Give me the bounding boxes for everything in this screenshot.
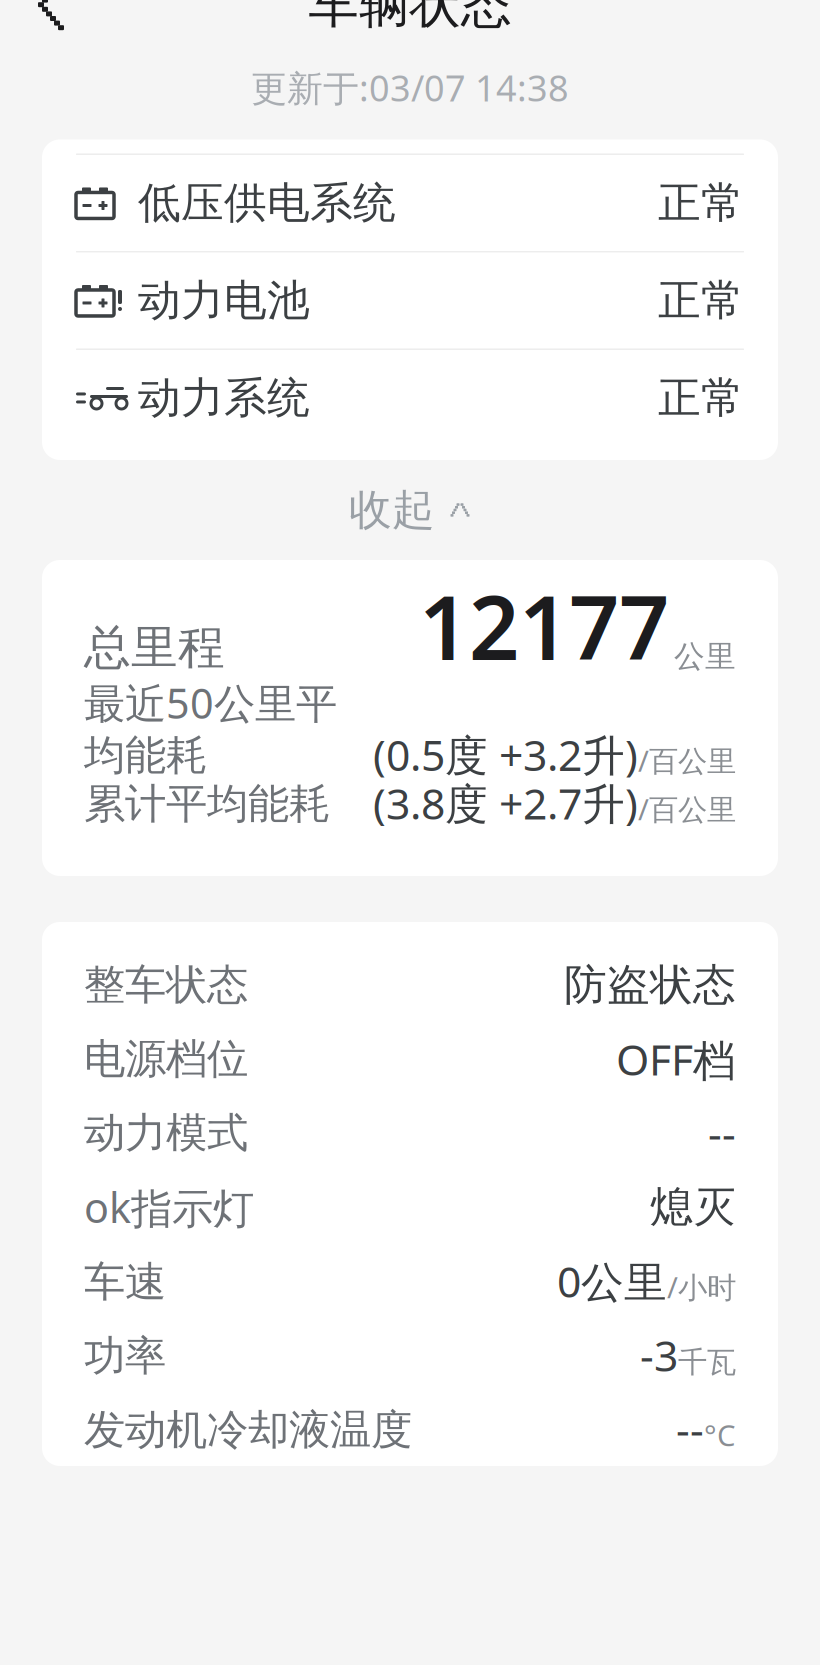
staticText: 更新于:03/07 14:38 — [251, 64, 569, 111]
staticText: 12177 — [419, 567, 669, 684]
staticText: 车速 — [84, 1256, 166, 1307]
staticText: 熄灭 — [650, 1181, 736, 1233]
staticText: 千瓦 — [678, 1344, 736, 1380]
staticText: 公里 — [674, 638, 736, 675]
staticText: -3 — [640, 1327, 678, 1383]
button[interactable]: 收起 — [315, 460, 505, 560]
staticText: 防盗状态 — [564, 959, 736, 1011]
button[interactable]: 动力系统 — [42, 350, 778, 446]
staticText: 总里程 — [84, 619, 225, 676]
staticText: 累计平均能耗 — [84, 778, 330, 829]
staticText: 功率 — [84, 1330, 166, 1381]
staticText: 车辆状态 — [308, 0, 512, 36]
staticText: 动力电池 — [138, 274, 310, 327]
button[interactable]: 低压供电系统 — [42, 155, 778, 251]
staticText: 正常 — [658, 372, 744, 424]
staticText: 动力模式 — [84, 1108, 248, 1158]
staticText: 低压供电系统 — [138, 177, 396, 229]
staticText: -- — [708, 1105, 736, 1161]
staticText: OFF档 — [616, 1030, 736, 1087]
staticText: 正常 — [658, 177, 744, 229]
staticText: 正常 — [658, 274, 744, 327]
staticText: (0.5度 +3.2升) — [373, 726, 638, 783]
staticText: °C — [704, 1415, 736, 1454]
staticText: 最近50公里平均能耗 — [84, 675, 337, 781]
staticText: 整车状态 — [84, 960, 248, 1010]
staticText: /百公里 — [638, 741, 736, 780]
staticText: /百公里 — [638, 789, 736, 828]
button[interactable]: 动力电池 — [42, 252, 778, 348]
staticText: 收起 — [349, 484, 435, 536]
staticText: /小时 — [667, 1267, 736, 1306]
staticText: (3.8度 +2.7升) — [373, 775, 638, 831]
staticText: ok指示灯 — [84, 1179, 254, 1234]
staticText: 电源档位 — [84, 1034, 248, 1084]
staticText: 发动机冷却液温度 — [84, 1404, 412, 1455]
button[interactable]: 返回 — [0, 0, 92, 44]
staticText: -- — [676, 1401, 704, 1457]
staticText: 0公里 — [557, 1253, 667, 1309]
staticText: 动力系统 — [138, 372, 310, 424]
